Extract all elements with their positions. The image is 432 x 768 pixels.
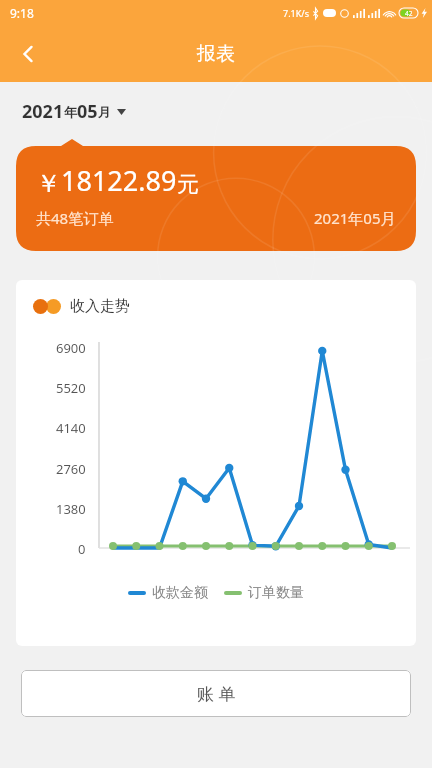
staticText: 订单数量 — [248, 584, 304, 602]
staticText: 共48笔订单 — [36, 208, 114, 228]
staticText: 05 — [77, 99, 98, 124]
button[interactable]: Back — [6, 32, 50, 76]
staticText: 42 — [405, 9, 413, 18]
button[interactable]: 订单数量 — [224, 584, 304, 602]
staticText: 4140 — [56, 419, 86, 437]
staticText: 2021 — [22, 99, 64, 124]
staticText: 0 — [78, 540, 86, 558]
staticText: 2021年05月 — [314, 208, 396, 228]
staticText: 账 单 — [197, 682, 236, 705]
staticText: 收入走势 — [70, 297, 130, 316]
staticText: 收款金额 — [152, 584, 208, 602]
staticText: 2760 — [56, 460, 86, 478]
staticText: 7.1K/s — [283, 7, 309, 19]
button[interactable]: 收款金额 — [128, 584, 208, 602]
staticText: 9:18 — [10, 5, 34, 21]
staticText: 6900 — [56, 339, 86, 357]
staticText: 元 — [177, 171, 199, 199]
button[interactable]: 2021 — [22, 99, 126, 124]
button[interactable]: 账 单 — [21, 670, 411, 717]
staticText: ￥ — [36, 168, 61, 199]
staticText: 18122.89 — [61, 162, 177, 199]
staticText: 报表 — [197, 42, 235, 66]
staticText: 1380 — [56, 500, 86, 518]
staticText: 5520 — [56, 379, 86, 397]
staticText: 月 — [98, 104, 111, 120]
staticText: 年 — [64, 104, 77, 120]
